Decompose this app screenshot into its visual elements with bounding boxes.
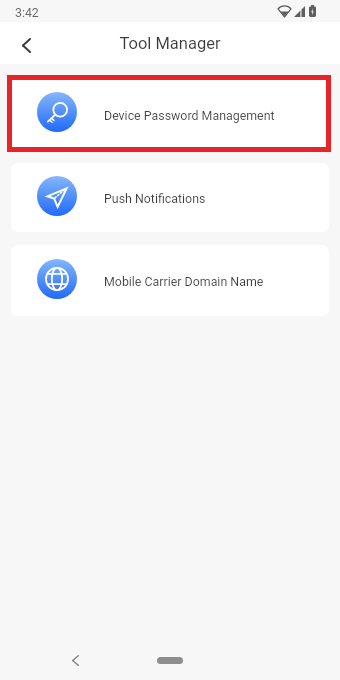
button[interactable]: Home — [157, 657, 183, 664]
staticText: Mobile Carrier Domain Name — [104, 274, 264, 289]
button[interactable]: Back — [8, 27, 44, 63]
button[interactable]: Push Notifications — [11, 163, 329, 232]
staticText: 3:42 — [15, 6, 39, 20]
button[interactable]: Device Password Management — [11, 80, 329, 148]
staticText: Tool Manager — [119, 34, 221, 53]
staticText: Device Password Management — [104, 108, 275, 123]
button[interactable]: Back — [62, 647, 88, 673]
staticText: Push Notifications — [104, 191, 206, 206]
button[interactable]: Mobile Carrier Domain Name — [11, 245, 329, 316]
